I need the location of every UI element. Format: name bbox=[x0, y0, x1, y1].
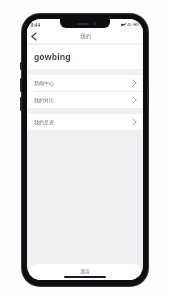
button[interactable]: 新闻中心 bbox=[27, 75, 143, 91]
staticText: 我的对比 bbox=[34, 97, 54, 103]
staticText: 8:44 bbox=[31, 22, 40, 28]
staticText: 4G bbox=[127, 22, 132, 27]
button[interactable]: gowbing bbox=[27, 45, 143, 69]
button[interactable]: 我的对比 bbox=[27, 92, 143, 108]
button[interactable]: Back bbox=[27, 30, 41, 43]
staticText: 我的 bbox=[80, 33, 91, 40]
staticText: gowbing bbox=[34, 51, 71, 63]
staticText: 新闻中心 bbox=[34, 80, 54, 86]
staticText: 我的足迹 bbox=[34, 119, 54, 125]
button[interactable]: 我的足迹 bbox=[27, 114, 143, 130]
staticText: 退出 bbox=[80, 268, 90, 274]
button[interactable]: 退出 bbox=[29, 264, 141, 280]
